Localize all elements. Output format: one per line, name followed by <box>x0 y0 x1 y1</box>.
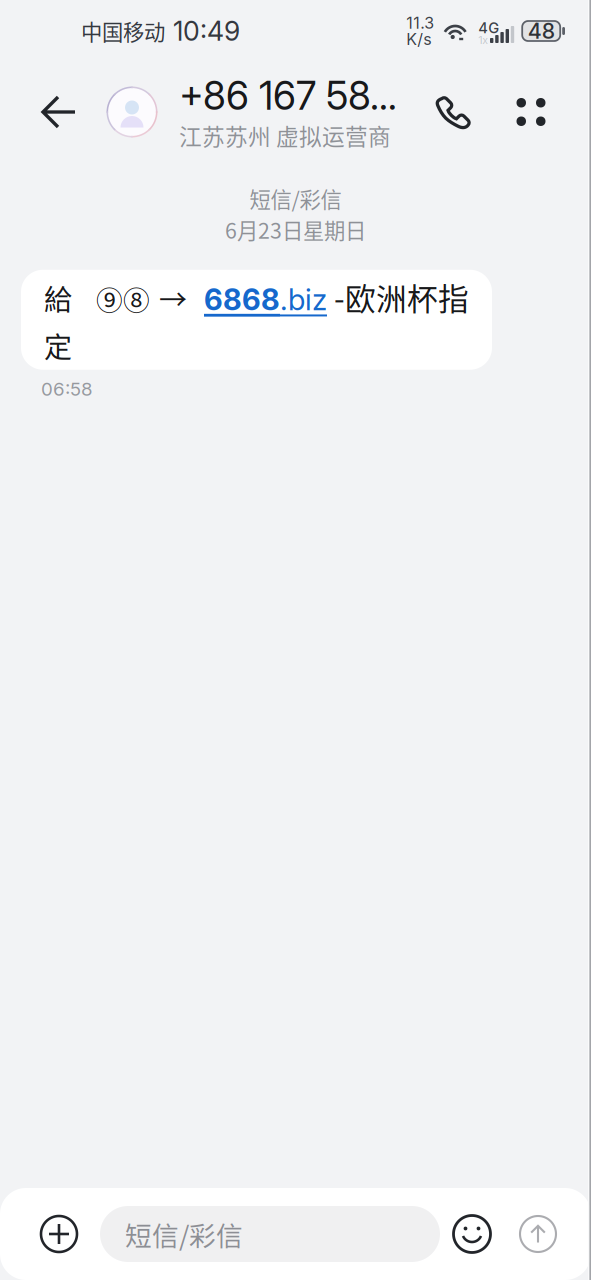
staticText: → <box>159 278 187 318</box>
staticText: 6月23日星期日 <box>225 214 366 245</box>
staticText: K/s <box>406 29 431 49</box>
staticText: 給 <box>44 278 72 318</box>
button[interactable]: Call <box>423 62 483 162</box>
button[interactable]: +86 167 58… <box>106 62 397 162</box>
staticText: 江苏苏州 虚拟运营商 <box>179 119 391 152</box>
staticText: 4G <box>478 19 499 37</box>
button[interactable]: Add attachment <box>35 1210 83 1258</box>
staticText: ⑨⑧ <box>96 279 150 318</box>
staticText: 6868 <box>204 282 280 317</box>
staticText: 短信/彩信 <box>125 1215 243 1253</box>
button[interactable]: More options <box>502 62 560 162</box>
staticText: -欧洲杯指 <box>334 275 469 319</box>
button[interactable]: 短信/彩信 <box>100 1206 440 1262</box>
staticText: 定 <box>44 325 72 366</box>
staticText: 中国移动 <box>81 16 165 46</box>
staticText: +86 167 58… <box>179 72 397 119</box>
button[interactable]: Back <box>20 62 98 162</box>
staticText: 48 <box>528 18 555 44</box>
button[interactable]: Emoji <box>448 1210 496 1258</box>
staticText: 短信/彩信 <box>249 183 341 214</box>
staticText: 10:49 <box>173 15 240 47</box>
staticText: 11.3 <box>406 13 434 32</box>
staticText: 06:58 <box>41 378 93 400</box>
button[interactable]: Send <box>514 1210 562 1258</box>
staticText: .biz <box>280 282 327 317</box>
staticText: 1x <box>478 34 488 47</box>
